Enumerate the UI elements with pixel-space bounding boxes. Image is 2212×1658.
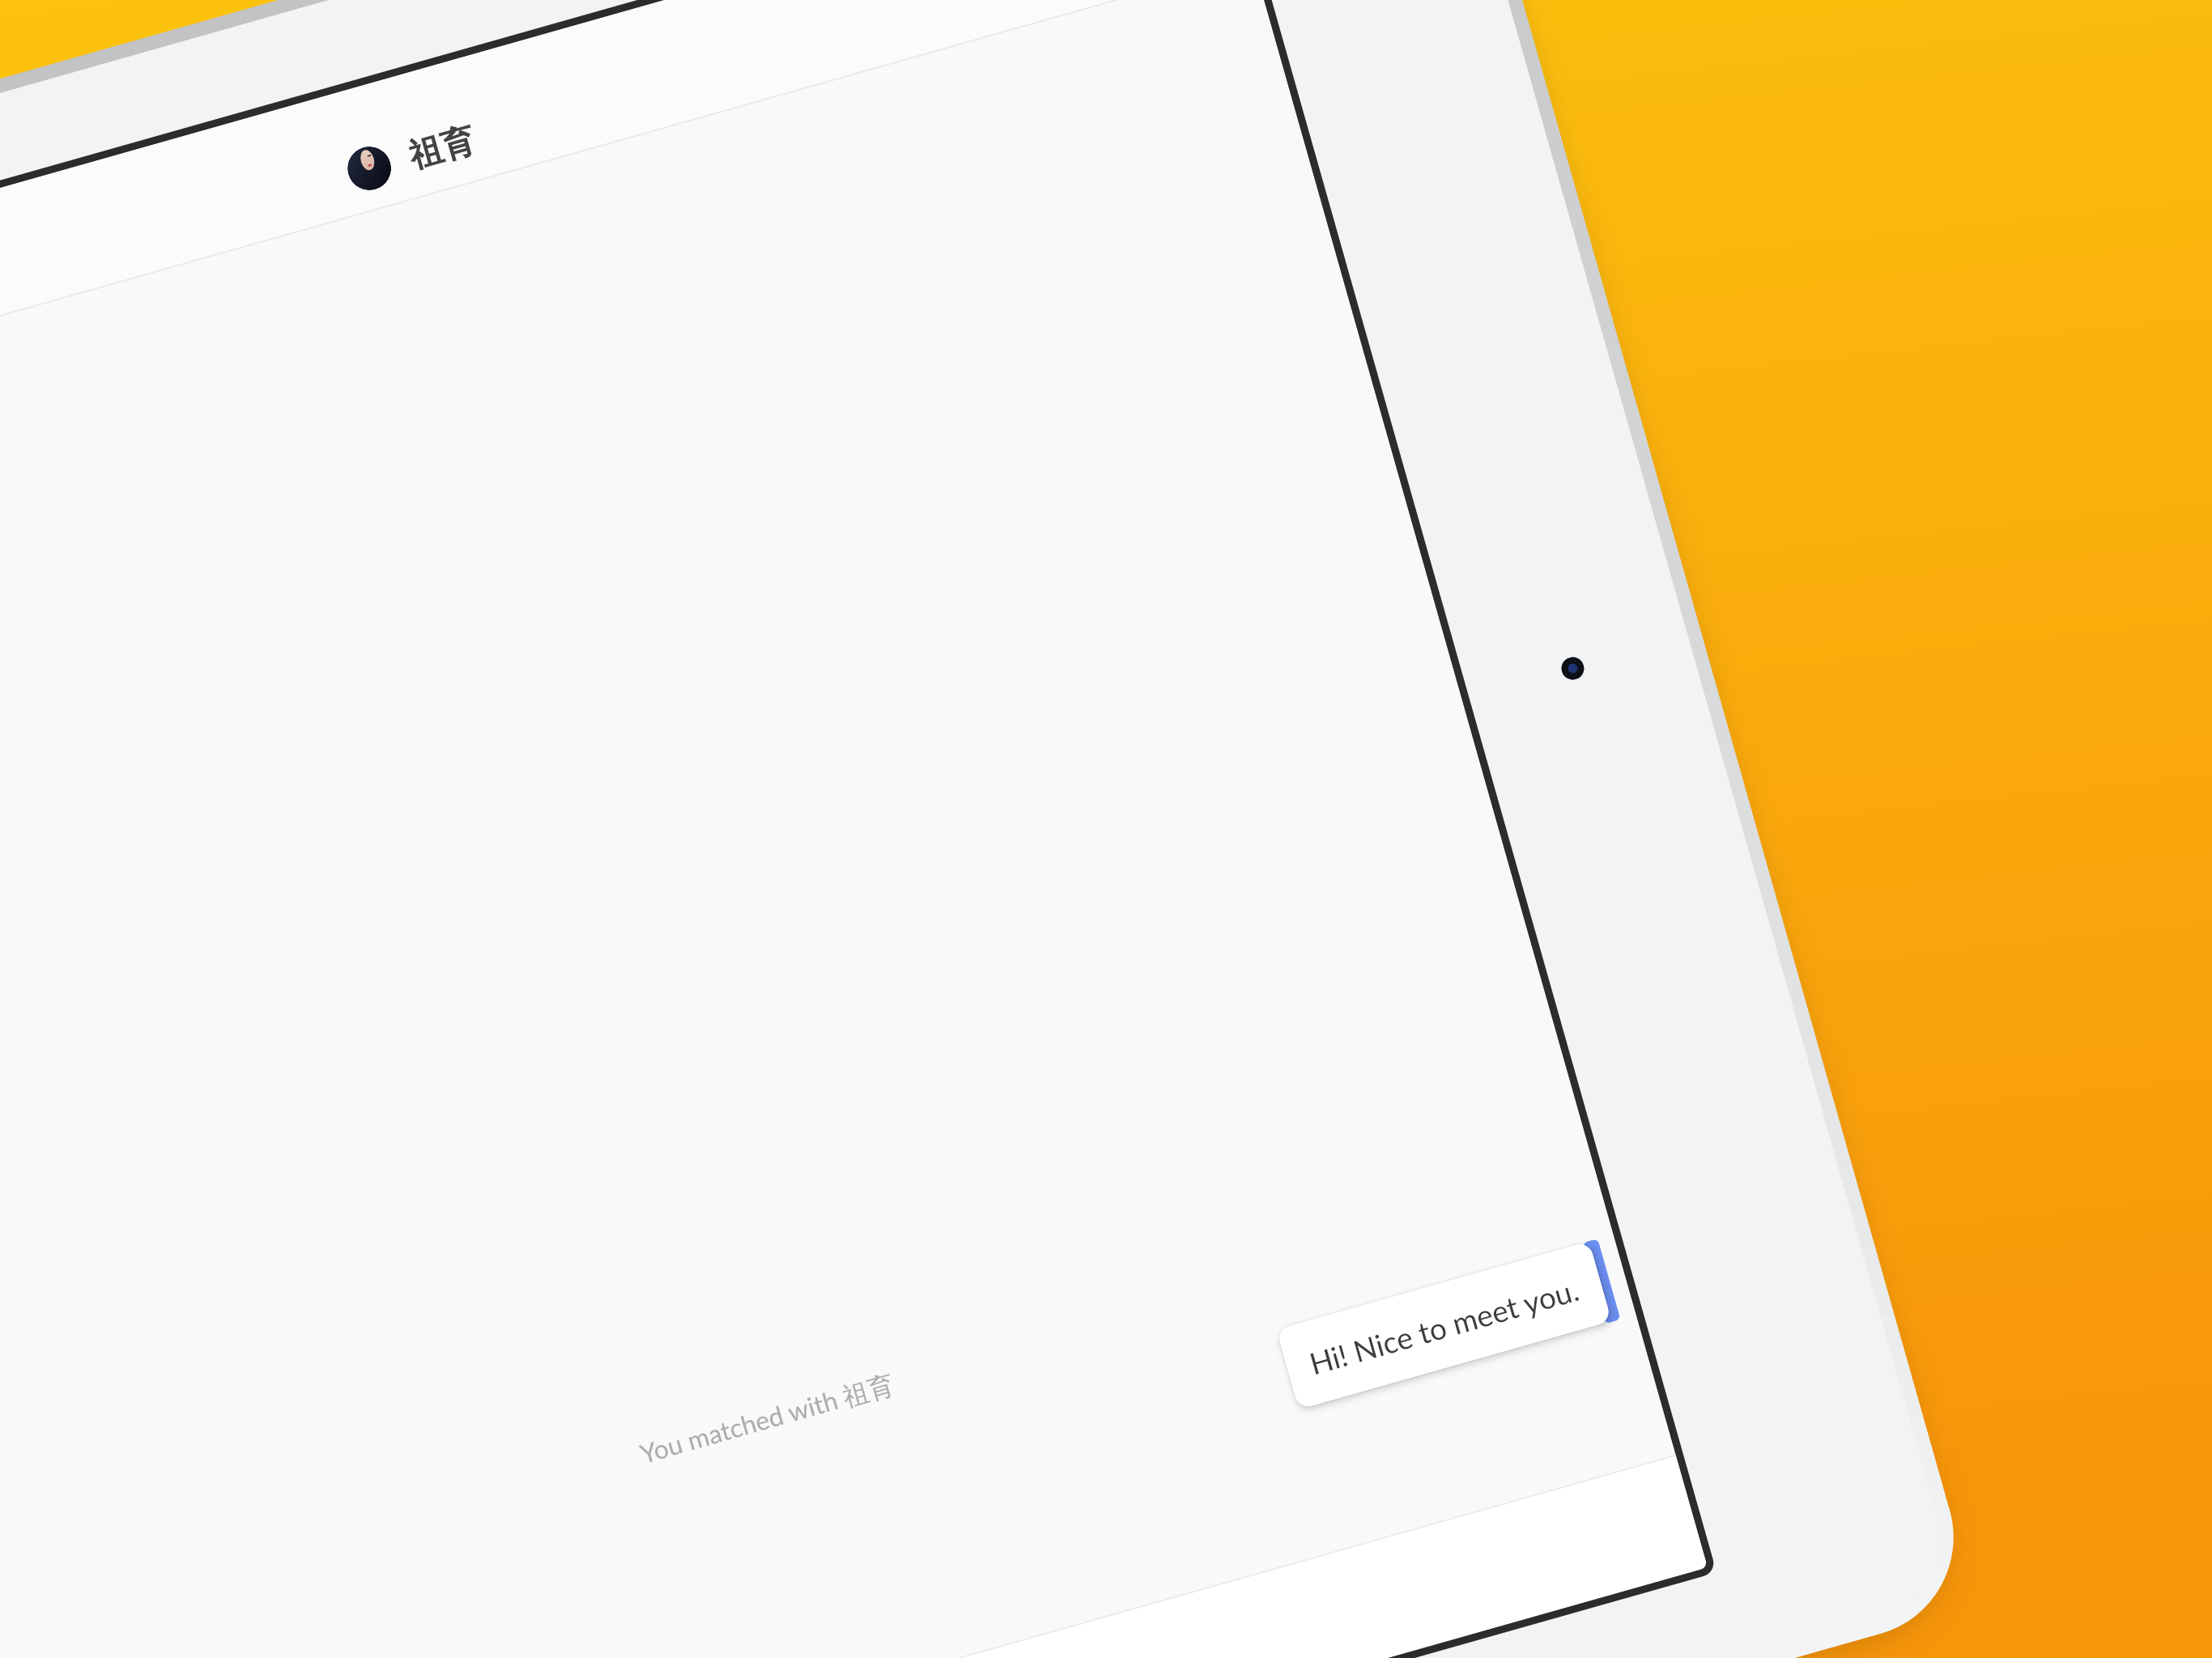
staticText: Hi! Nice to meet you. <box>1305 1271 1583 1381</box>
button[interactable]: Sent message <box>1582 1238 1621 1324</box>
button[interactable]: Profile photo <box>0 0 1253 429</box>
staticText: You matched with 祖育 <box>0 1169 1600 1658</box>
button[interactable]: Profile photo <box>342 141 396 195</box>
staticText: 祖育 <box>404 119 480 178</box>
button[interactable]: Message input <box>20 1456 1708 1658</box>
button[interactable]: Hi! Nice to meet you. <box>1276 1241 1612 1410</box>
other: Front camera <box>1559 654 1587 682</box>
